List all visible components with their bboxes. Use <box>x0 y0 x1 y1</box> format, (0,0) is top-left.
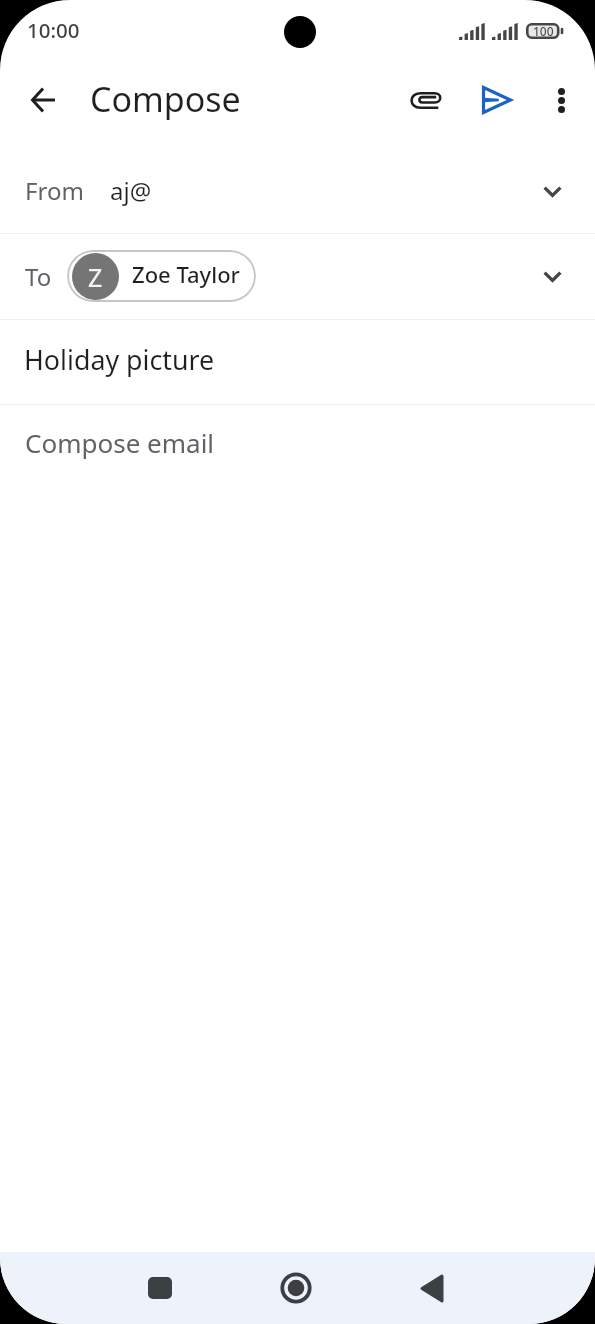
staticText: Compose <box>90 76 241 122</box>
button[interactable]: Home <box>228 1252 364 1324</box>
staticText: Z <box>88 260 103 294</box>
button[interactable]: Z <box>67 250 256 302</box>
staticText: To <box>25 260 52 293</box>
staticText: Compose email <box>25 425 215 460</box>
button[interactable]: Back <box>364 1252 500 1324</box>
button[interactable]: Attach file <box>403 76 451 124</box>
button[interactable]: Compose email <box>0 405 595 489</box>
staticText: Holiday picture <box>24 341 215 378</box>
staticText: 100 <box>533 23 554 39</box>
button[interactable]: More options <box>537 76 585 124</box>
staticText: Zoe Taylor <box>132 259 240 289</box>
button[interactable]: Recent apps <box>92 1252 228 1324</box>
button[interactable]: Navigate up <box>19 76 67 124</box>
staticText: aj@ <box>110 174 152 207</box>
staticText: 10:00 <box>27 16 80 44</box>
button[interactable]: To <box>0 234 595 319</box>
staticText: From <box>25 174 84 207</box>
button[interactable]: Send <box>473 76 521 124</box>
button[interactable]: From <box>0 140 595 233</box>
button[interactable]: Holiday picture <box>0 320 595 404</box>
